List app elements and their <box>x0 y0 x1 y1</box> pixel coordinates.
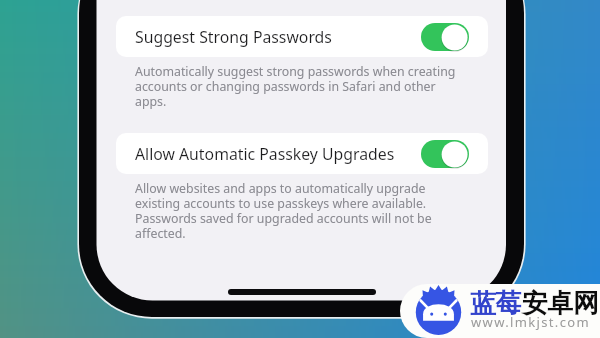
staticText: www.lmkjst.com <box>471 313 590 331</box>
button[interactable]: Toggle setting on <box>421 140 469 168</box>
staticText: Suggest Strong Passwords <box>135 26 421 48</box>
button[interactable]: Suggest Strong Passwords <box>116 16 488 57</box>
button[interactable]: Allow Automatic Passkey Upgrades <box>116 133 488 174</box>
staticText: Allow Automatic Passkey Upgrades <box>135 143 421 165</box>
staticText: Automatically suggest strong passwords w… <box>135 63 459 109</box>
staticText: Allow websites and apps to automatically… <box>135 180 459 241</box>
staticText: 安卓网 <box>522 287 599 319</box>
staticText: 蓝莓 <box>470 287 522 319</box>
button[interactable]: Toggle setting on <box>421 23 469 51</box>
